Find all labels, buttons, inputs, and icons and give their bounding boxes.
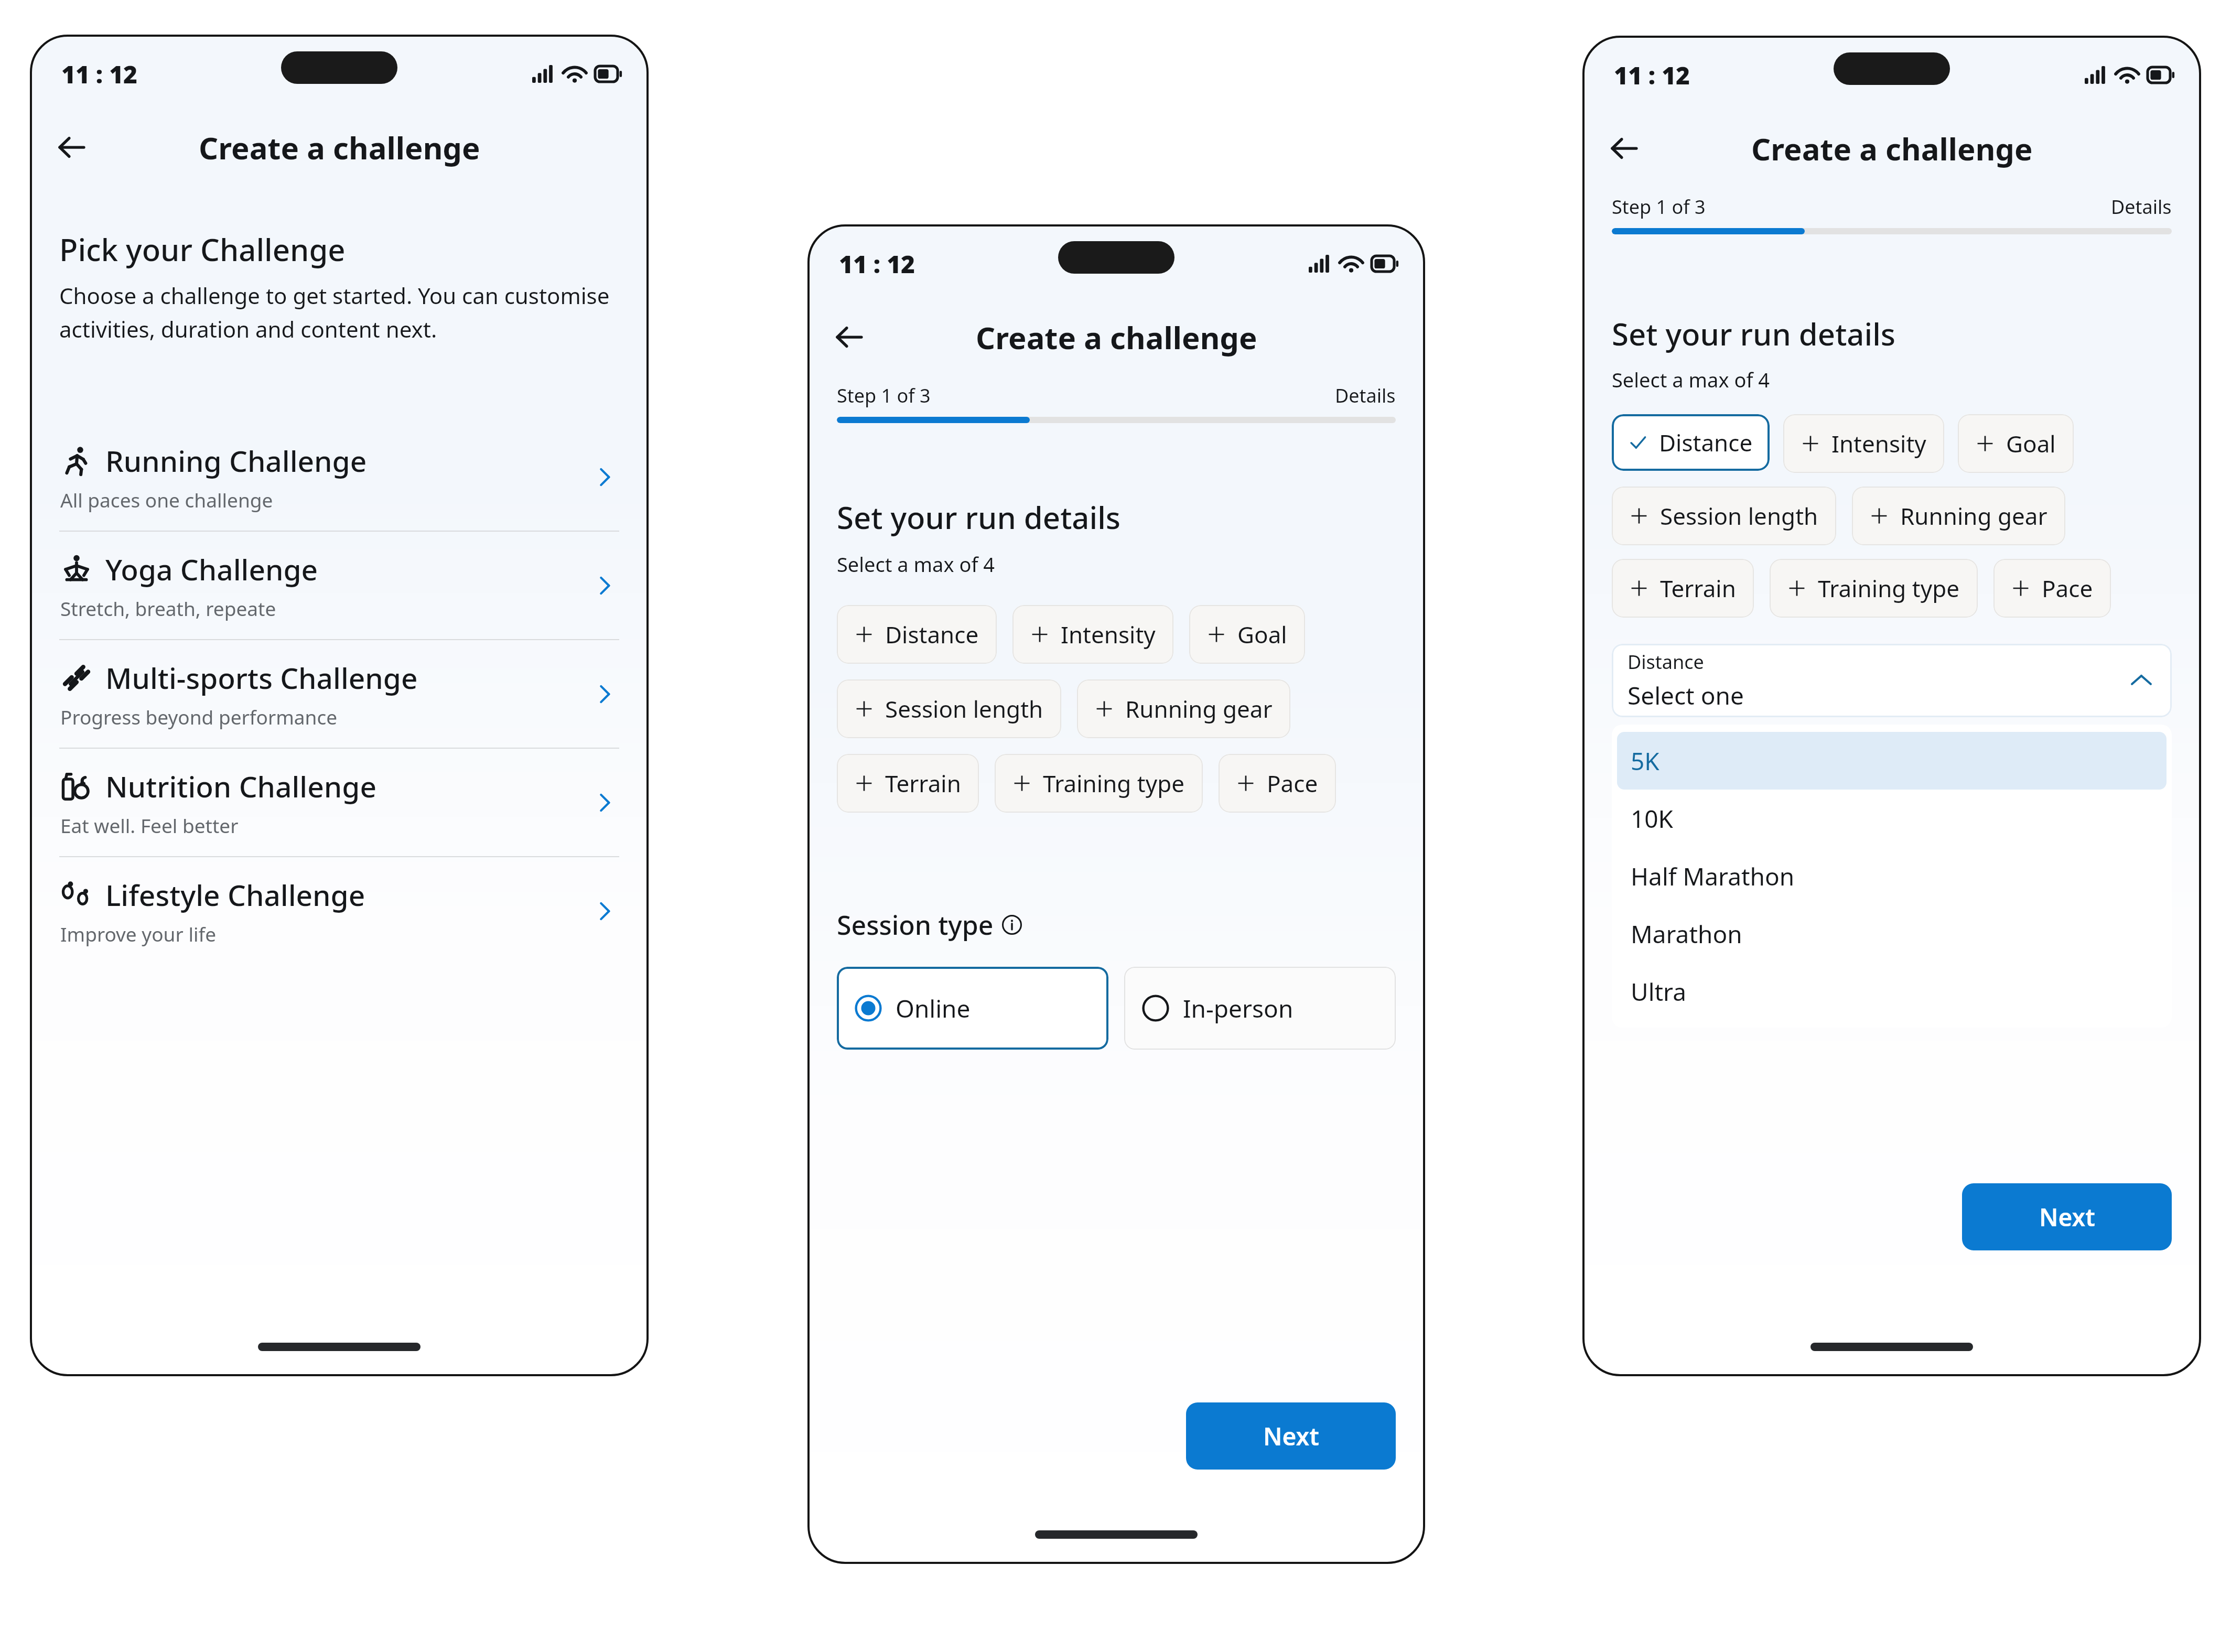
button[interactable]: Session length bbox=[1612, 487, 1836, 545]
staticText: Half Marathon bbox=[1631, 860, 1795, 893]
staticText: Choose a challenge to get started. You c… bbox=[59, 280, 619, 344]
staticText: 5K bbox=[1631, 744, 1659, 778]
button[interactable]: In-person bbox=[1124, 967, 1396, 1050]
staticText: 11 : 12 bbox=[61, 58, 138, 91]
staticText: Training type bbox=[1043, 768, 1185, 799]
button[interactable]: Pace bbox=[1219, 754, 1336, 813]
staticText: All paces one challenge bbox=[60, 487, 273, 513]
button[interactable]: Intensity bbox=[1012, 605, 1173, 664]
staticText: Set your run details bbox=[1612, 313, 1896, 354]
staticText: Next bbox=[2039, 1201, 2095, 1234]
staticText: Next bbox=[1263, 1420, 1319, 1453]
staticText: Distance bbox=[1659, 427, 1753, 458]
button[interactable]: Training type bbox=[1770, 559, 1978, 618]
staticText: Create a challenge bbox=[199, 127, 480, 168]
staticText: Distance bbox=[885, 619, 979, 650]
staticText: Select a max of 4 bbox=[837, 550, 995, 578]
button[interactable]: Terrain bbox=[837, 754, 979, 813]
staticText: Multi-sports Challenge bbox=[105, 658, 418, 697]
button[interactable]: Back bbox=[826, 315, 871, 360]
staticText: Step 1 of 3 bbox=[1612, 194, 1706, 220]
staticText: In-person bbox=[1183, 992, 1294, 1025]
staticText: Intensity bbox=[1831, 428, 1926, 459]
staticText: Progress beyond performance bbox=[60, 704, 338, 730]
button[interactable]: Goal bbox=[1958, 414, 2074, 473]
button[interactable]: Next bbox=[1962, 1183, 2172, 1250]
staticText: Session length bbox=[1660, 500, 1818, 532]
staticText: Select one bbox=[1628, 679, 1744, 712]
staticText: Session length bbox=[885, 693, 1043, 725]
button[interactable]: Distance bbox=[1612, 414, 1770, 471]
staticText: Online bbox=[896, 992, 971, 1025]
staticText: Distance bbox=[1628, 649, 1704, 675]
button[interactable]: 5K bbox=[1617, 732, 2167, 790]
button[interactable]: Back bbox=[49, 125, 94, 170]
button[interactable]: Pace bbox=[1993, 559, 2111, 618]
staticText: Create a challenge bbox=[1751, 128, 2033, 169]
staticText: Details bbox=[2111, 194, 2172, 220]
button[interactable]: Running Challenge bbox=[30, 423, 649, 531]
staticText: Yoga Challenge bbox=[105, 549, 318, 589]
button[interactable]: Ultra bbox=[1617, 963, 2167, 1020]
staticText: Create a challenge bbox=[976, 317, 1257, 358]
button[interactable]: Nutrition Challenge bbox=[30, 749, 649, 856]
staticText: Terrain bbox=[1660, 573, 1736, 604]
staticText: Pace bbox=[2042, 573, 2093, 604]
button[interactable]: Session length bbox=[837, 679, 1061, 738]
staticText: Step 1 of 3 bbox=[837, 383, 931, 408]
staticText: Goal bbox=[1237, 619, 1287, 650]
button[interactable]: Distance bbox=[1612, 644, 2172, 717]
staticText: Intensity bbox=[1061, 619, 1156, 650]
staticText: Running gear bbox=[1900, 500, 2047, 532]
button[interactable]: Back bbox=[1601, 126, 1646, 171]
staticText: Nutrition Challenge bbox=[105, 766, 376, 806]
staticText: 10K bbox=[1631, 802, 1674, 835]
staticText: Running Challenge bbox=[105, 441, 367, 480]
staticText: Terrain bbox=[885, 768, 961, 799]
staticText: Set your run details bbox=[837, 496, 1121, 538]
button[interactable]: Goal bbox=[1189, 605, 1305, 664]
button[interactable]: Marathon bbox=[1617, 905, 2167, 963]
button[interactable]: Running gear bbox=[1077, 679, 1290, 738]
staticText: Pick your Challenge bbox=[59, 229, 346, 270]
button[interactable]: Lifestyle Challenge bbox=[30, 857, 649, 965]
button[interactable]: Half Marathon bbox=[1617, 847, 2167, 905]
other: Collapse bbox=[2127, 666, 2156, 695]
staticText: Goal bbox=[2006, 428, 2056, 459]
button[interactable]: Online bbox=[837, 967, 1108, 1050]
staticText: Lifestyle Challenge bbox=[105, 875, 365, 914]
button[interactable]: Intensity bbox=[1783, 414, 1944, 473]
button[interactable]: 10K bbox=[1617, 790, 2167, 847]
staticText: Running gear bbox=[1125, 693, 1273, 725]
staticText: Pace bbox=[1267, 768, 1318, 799]
staticText: Select a max of 4 bbox=[1612, 366, 1770, 393]
staticText: Stretch, breath, repeate bbox=[60, 595, 276, 621]
button[interactable]: Next bbox=[1186, 1402, 1396, 1470]
button[interactable]: Running gear bbox=[1852, 487, 2065, 545]
staticText: 11 : 12 bbox=[839, 247, 915, 280]
staticText: Marathon bbox=[1631, 917, 1742, 951]
staticText: Training type bbox=[1818, 573, 1960, 604]
staticText: Ultra bbox=[1631, 975, 1686, 1008]
button[interactable]: Multi-sports Challenge bbox=[30, 640, 649, 748]
staticText: Session type bbox=[837, 907, 994, 943]
staticText: Eat well. Feel better bbox=[60, 812, 239, 838]
button[interactable]: Training type bbox=[995, 754, 1203, 813]
staticText: Improve your life bbox=[60, 921, 217, 947]
button[interactable]: Distance bbox=[837, 605, 997, 664]
staticText: 11 : 12 bbox=[1614, 59, 1690, 92]
button[interactable]: Terrain bbox=[1612, 559, 1754, 618]
button[interactable]: Yoga Challenge bbox=[30, 532, 649, 639]
staticText: Details bbox=[1335, 383, 1396, 408]
